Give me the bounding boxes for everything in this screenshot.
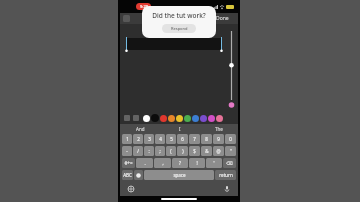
staticText: . <box>144 160 146 166</box>
button[interactable]: The <box>199 124 238 133</box>
staticText: - <box>126 148 128 154</box>
staticText: 9 <box>217 136 220 142</box>
button[interactable]: ⌫ <box>223 158 236 168</box>
button[interactable]: return <box>215 170 236 180</box>
staticText: 2 <box>137 136 140 142</box>
staticText: ? <box>179 160 181 166</box>
staticText: ⌫ <box>226 161 233 166</box>
button[interactable]: & <box>201 146 212 156</box>
button[interactable]: 1 <box>122 134 132 144</box>
button[interactable]: Colour 5 <box>176 115 183 122</box>
button[interactable]: #+= <box>122 158 135 168</box>
staticText: 6 <box>181 136 184 142</box>
button[interactable]: Brush size <box>228 28 235 109</box>
button[interactable]: Text format <box>124 115 130 121</box>
staticText: " <box>230 148 232 154</box>
button[interactable]: 4 <box>155 134 165 144</box>
staticText: Did the tut work? <box>152 11 206 20</box>
button[interactable]: Colour 7 <box>192 115 199 122</box>
button[interactable]: 7 <box>189 134 200 144</box>
staticText: 8 <box>205 136 208 142</box>
button[interactable]: : <box>144 146 154 156</box>
button[interactable]: , <box>154 158 171 168</box>
staticText: #+= <box>124 160 133 166</box>
button[interactable]: ( <box>166 146 176 156</box>
button[interactable]: Colour 9 <box>208 115 215 122</box>
button[interactable]: 0 <box>225 134 236 144</box>
button[interactable]: Back <box>123 15 130 22</box>
staticText: ' <box>213 160 215 166</box>
button[interactable]: Insert image <box>133 115 139 121</box>
button[interactable]: ! <box>189 158 205 168</box>
button[interactable]: 5 <box>166 134 176 144</box>
staticText: 1 <box>126 136 129 142</box>
button[interactable] <box>126 38 222 50</box>
button[interactable]: Colour 2 <box>151 114 159 122</box>
staticText: ; <box>159 148 161 154</box>
staticText: 5 <box>170 136 173 142</box>
button[interactable]: - <box>122 146 132 156</box>
button[interactable]: Did the tut work? <box>142 6 216 38</box>
button[interactable]: $ <box>189 146 200 156</box>
staticText: ) <box>182 148 184 154</box>
button[interactable]: @ <box>213 146 224 156</box>
staticText: 0 <box>229 136 232 142</box>
button[interactable]: I <box>160 124 199 133</box>
button[interactable]: 9 <box>213 134 224 144</box>
button[interactable]: And <box>120 124 160 133</box>
button[interactable]: Dictate <box>223 185 231 193</box>
button[interactable]: ' <box>206 158 222 168</box>
staticText: & <box>205 148 209 154</box>
staticText: The <box>215 126 223 132</box>
staticText: ( <box>170 148 172 154</box>
button[interactable]: Respond <box>162 24 196 33</box>
button[interactable]: 6 <box>177 134 188 144</box>
button[interactable]: Colour 4 <box>168 115 175 122</box>
button[interactable]: 3 <box>144 134 154 144</box>
staticText: space <box>173 172 186 178</box>
button[interactable]: Colour 8 <box>200 115 207 122</box>
button[interactable]: 2 <box>133 134 143 144</box>
button[interactable]: ; <box>155 146 165 156</box>
button[interactable]: space <box>144 170 214 180</box>
staticText: return <box>219 172 233 178</box>
button[interactable]: Change keyboard <box>127 185 135 193</box>
button[interactable]: Colour 1 <box>143 115 150 122</box>
staticText: 3 <box>148 136 151 142</box>
staticText: / <box>137 148 139 154</box>
button[interactable]: ) <box>177 146 188 156</box>
button[interactable]: Colour 3 <box>160 115 167 122</box>
staticText: $ <box>193 148 196 154</box>
staticText: 4 <box>159 136 162 142</box>
button[interactable]: . <box>136 158 153 168</box>
button[interactable]: 8 <box>201 134 212 144</box>
staticText: And <box>136 126 145 132</box>
button[interactable]: ? <box>172 158 188 168</box>
staticText: ! <box>196 160 198 166</box>
button[interactable]: Done <box>214 14 231 23</box>
staticText: I <box>179 126 181 132</box>
staticText: 7 <box>193 136 196 142</box>
button[interactable]: Colour 10 <box>216 115 223 122</box>
staticText: , <box>162 160 164 166</box>
staticText: Respond <box>171 26 188 31</box>
button[interactable]: ABC <box>122 170 133 180</box>
staticText: Done <box>216 15 229 22</box>
staticText: ABC <box>123 172 132 178</box>
staticText: : <box>148 148 150 154</box>
button[interactable]: " <box>225 146 236 156</box>
staticText: 9:29 <box>140 4 148 9</box>
button[interactable]: Colour 6 <box>184 115 191 122</box>
staticText: @ <box>216 148 221 154</box>
button[interactable]: / <box>133 146 143 156</box>
button[interactable]: Emoji <box>134 170 143 180</box>
